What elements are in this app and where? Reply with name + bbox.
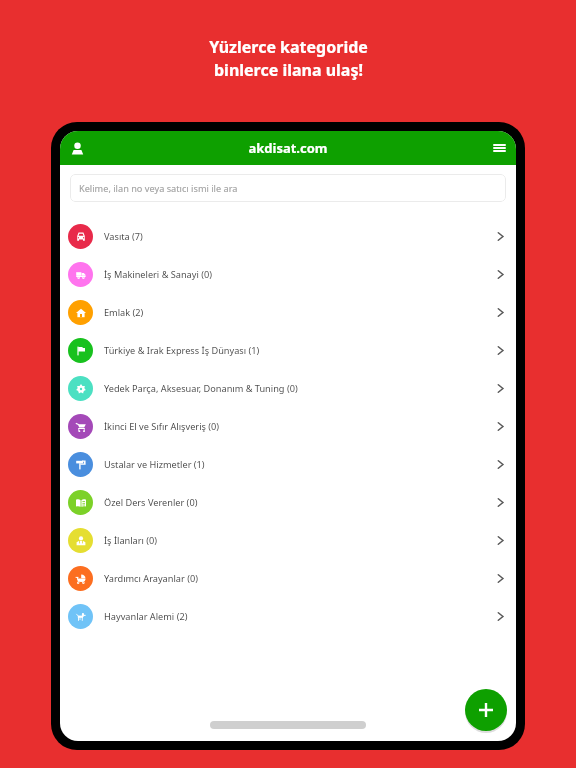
staticText: Kelime, ilan no veya satıcı ismi ile ara (79, 182, 238, 195)
button[interactable]: Türkiye & Irak Express İş Dünyası (1) (60, 331, 516, 369)
button[interactable]: Yardımcı Arayanlar (0) (60, 559, 516, 597)
button[interactable]: Kelime, ilan no veya satıcı ismi ile ara (70, 174, 506, 202)
staticText: Özel Ders Verenler (0) (104, 496, 198, 509)
staticText: Yüzlerce kategoride (209, 36, 368, 58)
staticText: akdisat.com (94, 139, 482, 157)
staticText: binlerce ilana ulaş! (214, 59, 363, 81)
button[interactable]: Hayvanlar Alemi (2) (60, 597, 516, 635)
staticText: Emlak (2) (104, 306, 144, 319)
staticText: Ustalar ve Hizmetler (1) (104, 458, 205, 471)
button[interactable]: İş İlanları (0) (60, 521, 516, 559)
button[interactable]: Emlak (2) (60, 293, 516, 331)
staticText: İş İlanları (0) (104, 534, 158, 547)
staticText: Yedek Parça, Aksesuar, Donanım & Tuning … (104, 382, 298, 395)
button[interactable]: Menu (482, 131, 516, 165)
button[interactable]: İş Makineleri & Sanayi (0) (60, 255, 516, 293)
staticText: İş Makineleri & Sanayi (0) (104, 268, 212, 281)
button[interactable]: Ustalar ve Hizmetler (1) (60, 445, 516, 483)
staticText: İkinci El ve Sıfır Alışveriş (0) (104, 420, 220, 433)
button[interactable]: Özel Ders Verenler (0) (60, 483, 516, 521)
button[interactable]: Yedek Parça, Aksesuar, Donanım & Tuning … (60, 369, 516, 407)
button[interactable]: Account (60, 131, 94, 165)
staticText: Yardımcı Arayanlar (0) (104, 572, 198, 585)
button[interactable]: Vasıta (7) (60, 217, 516, 255)
staticText: Vasıta (7) (104, 230, 143, 243)
staticText: Hayvanlar Alemi (2) (104, 610, 188, 623)
staticText: Türkiye & Irak Express İş Dünyası (1) (104, 344, 260, 357)
button[interactable]: İkinci El ve Sıfır Alışveriş (0) (60, 407, 516, 445)
button[interactable]: Add (465, 689, 507, 731)
